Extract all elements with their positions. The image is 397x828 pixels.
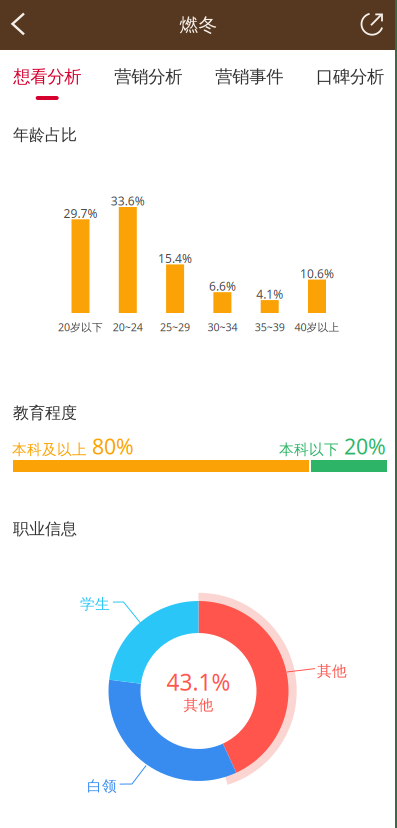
staticText: 年龄占比: [13, 125, 77, 145]
staticText: 20岁以下: [58, 320, 103, 334]
staticText: 职业信息: [13, 519, 77, 539]
staticText: 教育程度: [13, 403, 77, 423]
staticText: 25~29: [160, 320, 190, 334]
staticText: 43.1%: [166, 667, 230, 697]
staticText: 本科及以上: [12, 440, 87, 458]
staticText: 白领: [87, 777, 117, 795]
staticText: 33.6%: [111, 193, 145, 209]
staticText: 学生: [80, 595, 110, 613]
staticText: 本科以下: [279, 440, 339, 458]
button[interactable]: 营销事件: [199, 50, 300, 100]
button[interactable]: 营销分析: [98, 50, 199, 100]
button[interactable]: 口碑分析: [300, 50, 397, 100]
staticText: 营销事件: [215, 66, 283, 87]
staticText: 80%: [92, 432, 134, 460]
button[interactable]: Back: [0, 0, 46, 50]
button[interactable]: Share: [353, 0, 397, 50]
staticText: 其他: [317, 662, 347, 680]
staticText: 4.1%: [256, 286, 283, 302]
staticText: 燃冬: [179, 13, 217, 36]
staticText: 10.6%: [300, 266, 334, 281]
staticText: 20%: [344, 432, 386, 460]
staticText: 35~39: [255, 320, 285, 334]
staticText: 营销分析: [114, 66, 182, 87]
button[interactable]: 想看分析: [0, 50, 98, 100]
staticText: 40岁以上: [294, 320, 339, 334]
staticText: 20~24: [113, 320, 143, 334]
staticText: 6.6%: [209, 278, 236, 294]
staticText: 30~34: [207, 320, 237, 334]
staticText: 想看分析: [13, 66, 81, 87]
staticText: 15.4%: [158, 250, 192, 266]
staticText: 29.7%: [63, 205, 97, 221]
staticText: 口碑分析: [316, 66, 384, 87]
staticText: 其他: [183, 696, 213, 714]
